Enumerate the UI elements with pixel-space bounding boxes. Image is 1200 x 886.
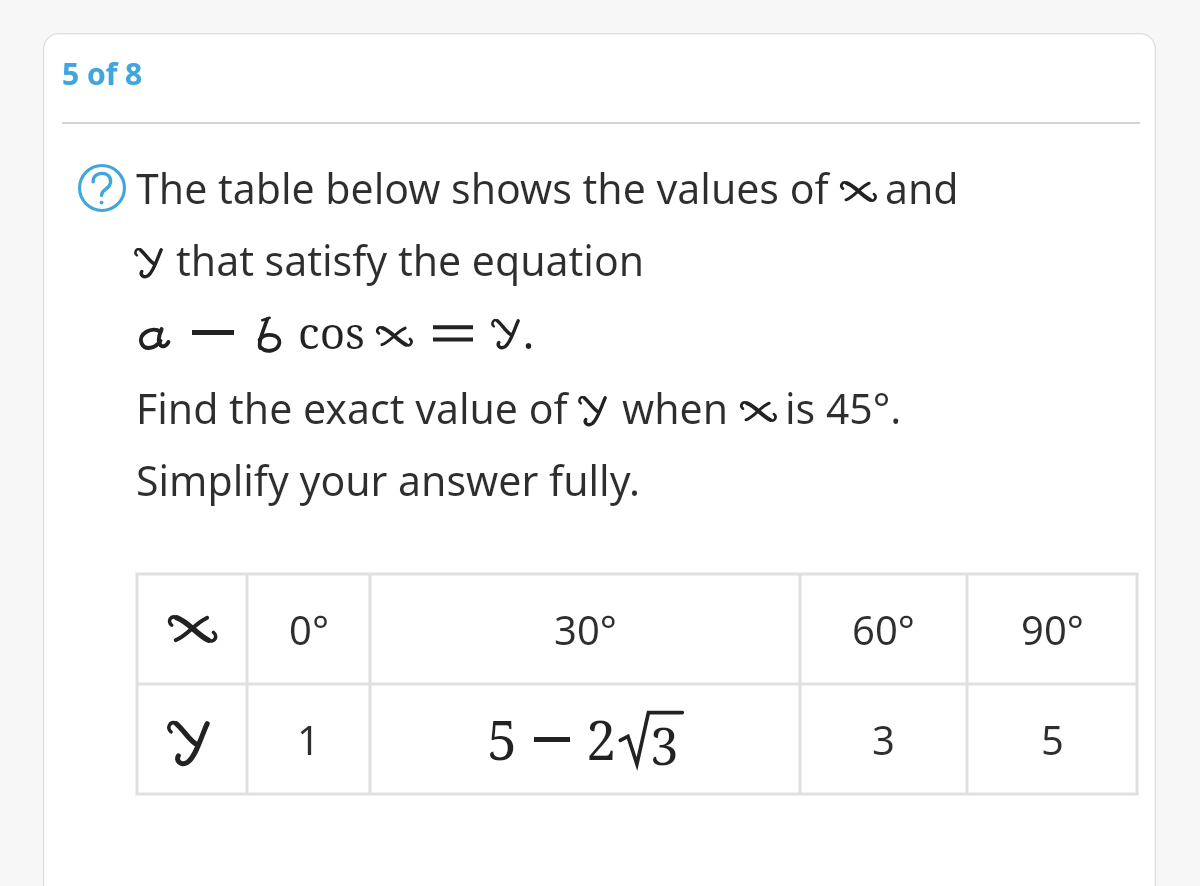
staticText: 2	[586, 702, 617, 776]
staticText: 30°	[554, 602, 617, 656]
staticText: is 45°.	[785, 380, 902, 436]
staticText: 3	[650, 710, 679, 776]
staticText: 90°	[1021, 602, 1084, 656]
staticText: and	[885, 160, 959, 216]
button[interactable]: 5 of 8	[43, 33, 1156, 886]
staticText: when	[622, 380, 729, 436]
staticText: 5	[1041, 712, 1064, 766]
staticText: 0°	[289, 602, 329, 656]
staticText: 60°	[852, 602, 915, 656]
staticText: Simplify your answer fully.	[136, 452, 640, 508]
staticText: The table below shows the values of	[136, 160, 829, 216]
button[interactable]: Help	[78, 164, 126, 212]
staticText: .	[523, 302, 534, 362]
staticText: 5 of 8	[62, 53, 143, 94]
staticText: 1	[297, 712, 320, 766]
staticText: that satisfy the equation	[176, 232, 645, 288]
staticText: 5	[487, 702, 518, 776]
staticText: cos	[298, 302, 365, 362]
staticText: 3	[872, 712, 895, 766]
staticText: Find the exact value of	[136, 380, 568, 436]
